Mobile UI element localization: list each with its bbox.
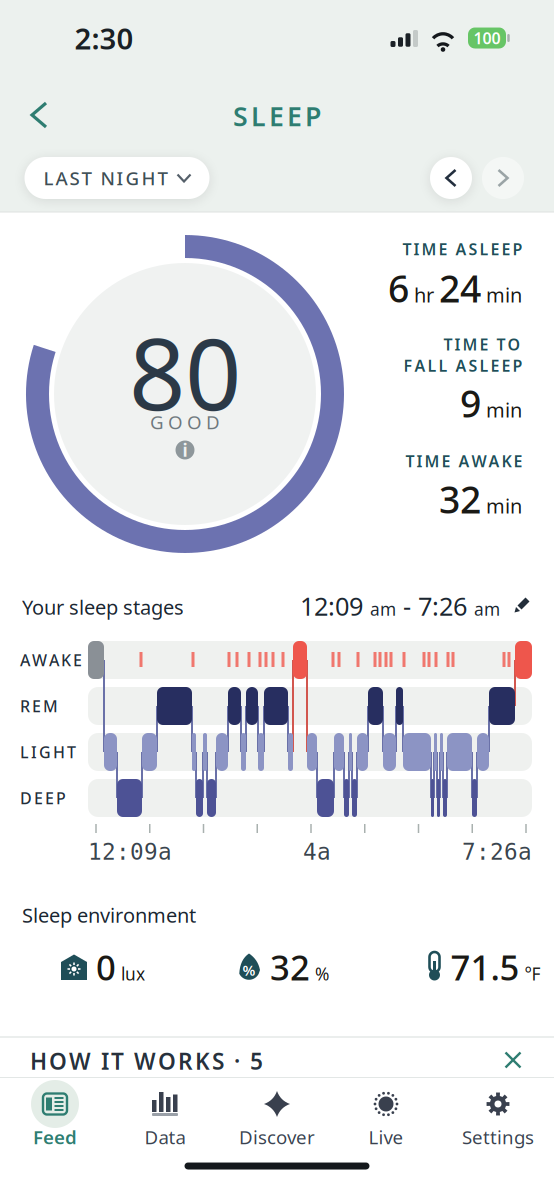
staticText: Your sleep stages bbox=[22, 594, 184, 620]
button[interactable] bbox=[19, 95, 59, 135]
staticText: L I G H T bbox=[20, 741, 76, 763]
staticText: Feed bbox=[33, 1125, 77, 1149]
button[interactable]: Live bbox=[341, 1078, 431, 1152]
staticText: 9 min bbox=[460, 378, 522, 428]
staticText: 6 hr 24 min bbox=[388, 263, 522, 313]
staticText: 32 min bbox=[439, 474, 522, 524]
staticText: 100 bbox=[473, 27, 500, 49]
staticText: S L E E P bbox=[233, 98, 321, 134]
button[interactable]: Discover bbox=[232, 1078, 322, 1152]
staticText: A W A K E bbox=[20, 649, 82, 671]
staticText: Sleep environment bbox=[22, 902, 196, 928]
button[interactable]: L A S T N I G H T bbox=[24, 157, 209, 199]
staticText: Data bbox=[144, 1125, 185, 1149]
staticText: 2:30 bbox=[74, 18, 133, 57]
button[interactable]: Data bbox=[120, 1078, 210, 1152]
staticText: 12:09a bbox=[88, 839, 172, 865]
staticText: R E M bbox=[20, 695, 58, 717]
staticText: Settings bbox=[462, 1125, 534, 1149]
button[interactable] bbox=[511, 592, 533, 616]
staticText: Discover bbox=[239, 1125, 315, 1149]
staticText: 4a bbox=[303, 839, 331, 865]
staticText: i bbox=[182, 438, 187, 461]
staticText: 80 bbox=[129, 306, 241, 437]
button[interactable]: Settings bbox=[453, 1078, 543, 1152]
staticText: D E E P bbox=[20, 787, 66, 809]
button[interactable] bbox=[430, 157, 472, 199]
staticText: 12:09 am - 7:26 am bbox=[300, 589, 500, 623]
staticText: L A S T N I G H T bbox=[43, 166, 167, 190]
button[interactable]: i bbox=[175, 438, 194, 461]
staticText: Live bbox=[368, 1125, 403, 1149]
staticText: 32 % bbox=[270, 944, 329, 990]
staticText: 0 lux bbox=[96, 944, 145, 990]
button[interactable] bbox=[482, 157, 524, 199]
button[interactable]: Feed bbox=[10, 1078, 100, 1152]
staticText: 71.5 °F bbox=[450, 944, 540, 990]
staticText: T I M E T O F A L L A S L E E P bbox=[401, 334, 522, 376]
staticText: T I M E A W A K E bbox=[405, 450, 522, 472]
button[interactable] bbox=[505, 1052, 520, 1067]
staticText: 7:26a bbox=[462, 839, 532, 865]
staticText: % bbox=[242, 960, 255, 980]
staticText: G O O D bbox=[150, 410, 220, 434]
staticText: H O W I T W O R K S · 5 bbox=[30, 1046, 263, 1076]
staticText: T I M E A S L E E P bbox=[402, 238, 522, 260]
